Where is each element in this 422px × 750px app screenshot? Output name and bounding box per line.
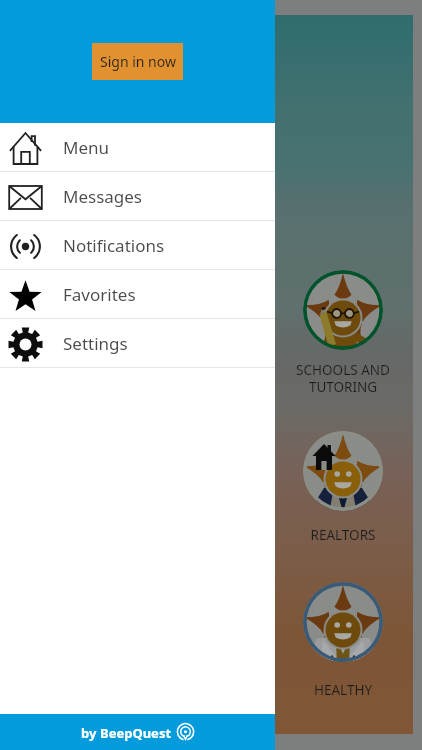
staticText: Favorites — [63, 283, 136, 306]
staticText: REALTORS — [278, 526, 408, 544]
button[interactable]: HEALTHY — [278, 582, 408, 699]
staticText: Messages — [63, 185, 143, 208]
button[interactable]: by — [0, 714, 275, 750]
button[interactable]: Favorites — [0, 270, 275, 318]
staticText: by — [81, 724, 100, 742]
button[interactable]: REALTORS — [278, 431, 408, 544]
staticText: Menu — [63, 136, 110, 159]
staticText: SCHOOLS AND TUTORING — [278, 361, 408, 396]
button[interactable]: SCHOOLS AND TUTORING — [278, 270, 408, 396]
staticText: Sign in now — [100, 52, 176, 71]
button[interactable]: Settings — [0, 319, 275, 367]
staticText: Notifications — [63, 234, 165, 257]
staticText: BeepQuest — [100, 724, 172, 742]
button[interactable]: Messages — [0, 172, 275, 220]
button[interactable]: Menu — [0, 123, 275, 171]
button[interactable]: Sign in now — [92, 43, 183, 80]
staticText: Settings — [63, 332, 128, 355]
button[interactable]: Notifications — [0, 221, 275, 269]
staticText: HEALTHY — [278, 681, 408, 699]
